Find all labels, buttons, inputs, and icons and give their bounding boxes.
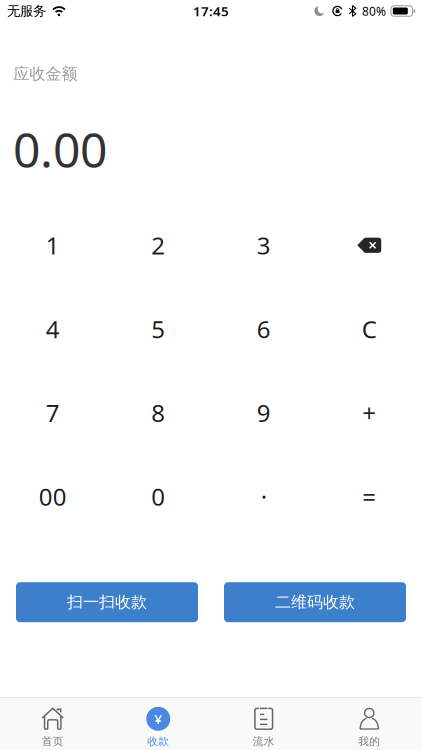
staticText: 收款: [147, 735, 169, 748]
staticText: =: [362, 480, 376, 512]
button[interactable]: 2: [105, 203, 211, 287]
staticText: 我的: [358, 735, 380, 748]
staticText: 1: [46, 229, 60, 261]
staticText: ¥: [154, 710, 162, 728]
button[interactable]: +: [316, 371, 422, 454]
staticText: 首页: [42, 735, 64, 748]
staticText: 6: [257, 313, 271, 345]
staticText: 扫一扫收款: [67, 592, 147, 612]
staticText: 流水: [253, 735, 275, 748]
staticText: 2: [151, 229, 165, 261]
staticText: 0.00: [13, 117, 107, 181]
staticText: 80%: [362, 3, 386, 19]
staticText: 二维码收款: [275, 592, 355, 612]
staticText: 3: [257, 229, 271, 261]
staticText: +: [362, 397, 376, 429]
staticText: 9: [257, 397, 271, 429]
staticText: 00: [39, 480, 67, 512]
button[interactable]: 0: [105, 454, 211, 538]
staticText: 应收金额: [13, 64, 77, 84]
staticText: 17:45: [193, 2, 229, 20]
button[interactable]: 我的: [316, 698, 422, 750]
button[interactable]: 1: [0, 203, 105, 287]
staticText: C: [362, 313, 377, 345]
button[interactable]: 5: [105, 287, 211, 371]
staticText: 8: [151, 397, 165, 429]
staticText: 无服务: [7, 3, 46, 19]
button[interactable]: 8: [105, 371, 211, 454]
button[interactable]: 流水: [211, 698, 316, 750]
staticText: ·: [261, 480, 267, 512]
button[interactable]: ¥: [105, 698, 211, 750]
button[interactable]: 9: [211, 371, 316, 454]
staticText: 4: [46, 313, 60, 345]
staticText: 0: [151, 480, 165, 512]
button[interactable]: C: [316, 287, 422, 371]
button[interactable]: 3: [211, 203, 316, 287]
button[interactable]: ·: [211, 454, 316, 538]
button[interactable]: =: [316, 454, 422, 538]
button[interactable]: 4: [0, 287, 105, 371]
staticText: 7: [46, 397, 60, 429]
button[interactable]: 扫一扫收款: [16, 582, 198, 622]
button[interactable]: 00: [0, 454, 105, 538]
button[interactable]: 二维码收款: [224, 582, 406, 622]
button[interactable]: 首页: [0, 698, 105, 750]
staticText: 5: [151, 313, 165, 345]
button[interactable]: 删除: [316, 203, 422, 287]
button[interactable]: 7: [0, 371, 105, 454]
button[interactable]: 6: [211, 287, 316, 371]
